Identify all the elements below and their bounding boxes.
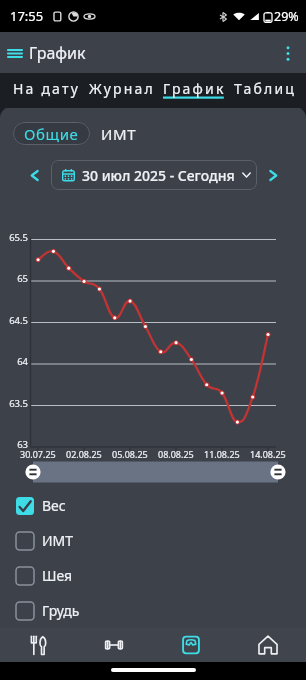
staticText: Вес — [42, 496, 66, 515]
staticText: 64.5 — [0, 314, 28, 327]
staticText: Таблица — [234, 79, 303, 98]
staticText: Грудь — [42, 601, 80, 620]
button[interactable]: Home — [229, 628, 306, 662]
staticText: 02.08.25 — [66, 448, 102, 460]
staticText: Шея — [42, 566, 73, 585]
button[interactable]: Таблица — [229, 73, 306, 108]
button[interactable]: Вес — [0, 488, 306, 523]
button[interactable]: Next period — [261, 163, 285, 187]
staticText: ИМТ — [101, 124, 137, 144]
button[interactable]: Previous period — [22, 163, 46, 187]
button[interactable]: Open navigation menu — [4, 42, 86, 64]
staticText: 64 — [0, 355, 28, 368]
staticText: 14.08.25 — [250, 448, 286, 460]
staticText: 05.08.25 — [112, 448, 148, 460]
staticText: 30.07.25 — [20, 448, 56, 460]
button[interactable]: Общие — [13, 122, 90, 145]
button[interactable]: ИМТ — [97, 122, 141, 145]
button[interactable]: Range start — [25, 464, 43, 482]
button[interactable]: На дату — [8, 73, 84, 108]
staticText: График — [163, 79, 226, 98]
button[interactable]: 30 июл 2025 - Сегодня — [51, 160, 257, 190]
staticText: 11.08.25 — [204, 448, 240, 460]
staticText: На дату — [13, 79, 81, 98]
staticText: Общие — [24, 124, 79, 144]
staticText: 65.5 — [0, 231, 28, 244]
button[interactable]: Шея — [0, 558, 306, 593]
staticText: 63.5 — [0, 397, 28, 410]
button[interactable]: Range end — [269, 464, 287, 482]
staticText: 08.08.25 — [158, 448, 194, 460]
staticText: График — [29, 42, 86, 64]
staticText: 17:55 — [10, 7, 44, 25]
button[interactable]: График — [158, 73, 229, 108]
staticText: 29% — [274, 8, 299, 25]
staticText: ИМТ — [42, 531, 74, 550]
button[interactable]: ИМТ — [0, 523, 306, 558]
button[interactable]: Workout — [76, 628, 152, 662]
staticText: 63 — [0, 438, 28, 451]
button[interactable]: Nutrition — [0, 628, 76, 662]
staticText: 65 — [0, 272, 28, 285]
button[interactable]: More options — [273, 38, 303, 68]
button[interactable]: Weight — [152, 628, 229, 662]
button[interactable]: Грудь — [0, 593, 306, 628]
button[interactable]: Журнал — [84, 73, 158, 108]
staticText: 30 июл 2025 - Сегодня — [82, 166, 235, 185]
staticText: Журнал — [89, 79, 155, 98]
